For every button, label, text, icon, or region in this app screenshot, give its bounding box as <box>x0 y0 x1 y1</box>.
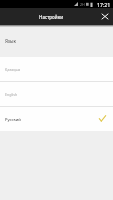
staticText: Русский <box>5 117 21 122</box>
staticText: English <box>5 92 18 97</box>
staticText: 17:21 <box>97 1 111 8</box>
button[interactable]: Русский <box>0 107 113 131</box>
button[interactable]: Қазақша <box>0 57 113 81</box>
staticText: Настройки <box>39 14 64 20</box>
staticText: Қазақша <box>5 67 21 72</box>
staticText: 2H <box>80 2 85 7</box>
button[interactable]: Close <box>96 8 113 25</box>
button[interactable]: English <box>0 82 113 106</box>
staticText: Язык <box>5 38 16 44</box>
